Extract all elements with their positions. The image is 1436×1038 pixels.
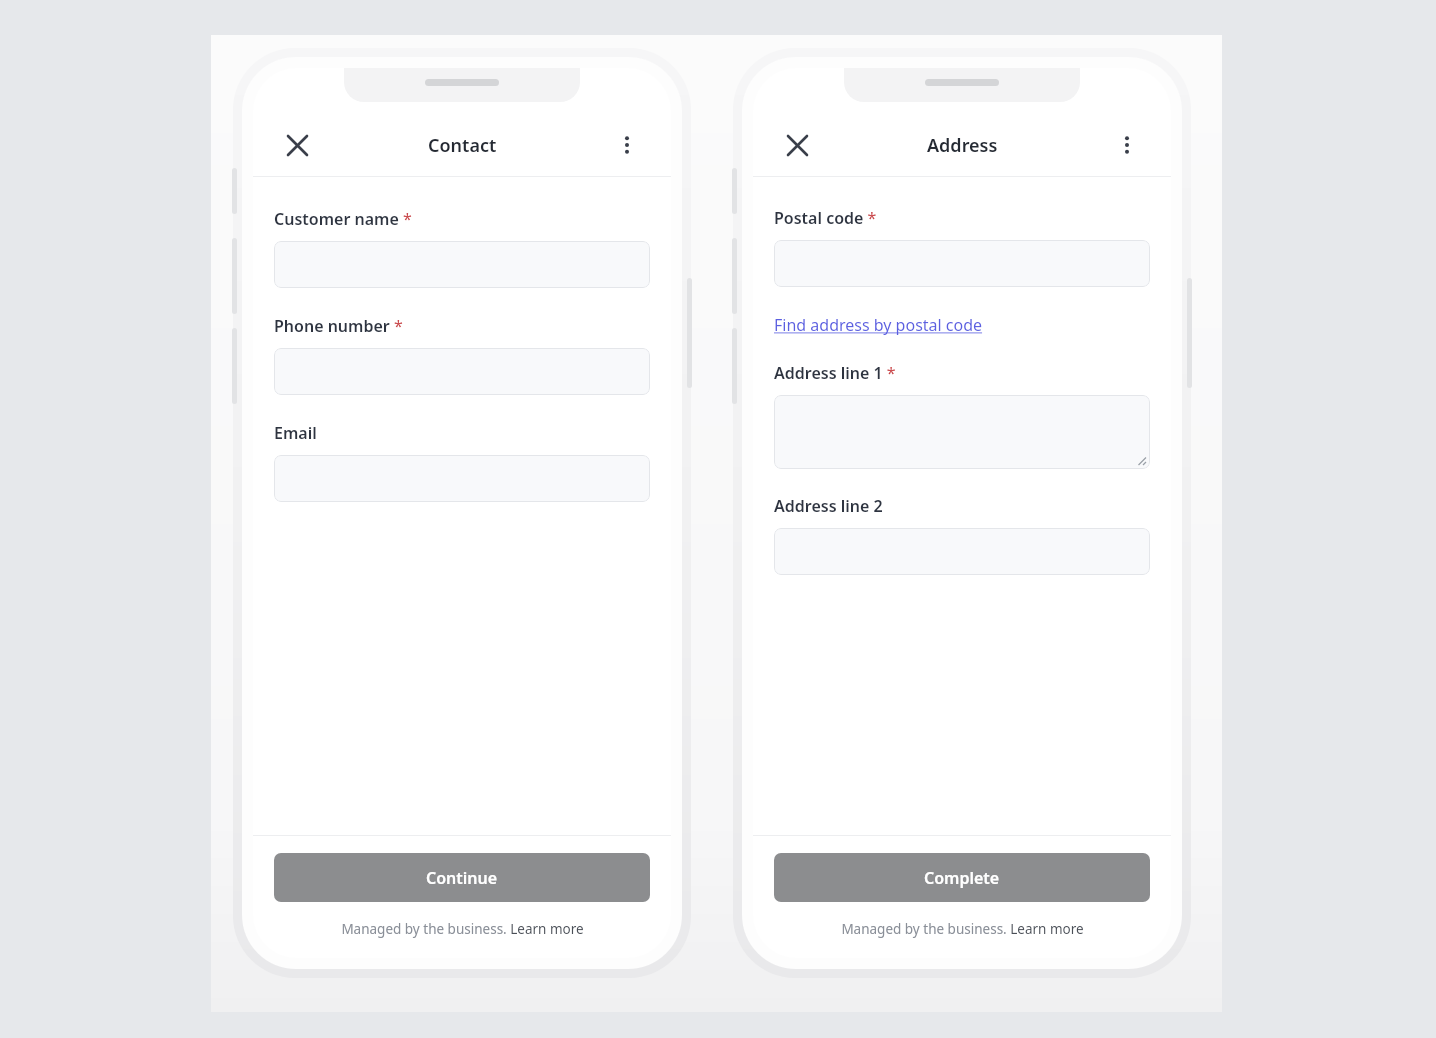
staticText: Managed by the business. Learn more bbox=[841, 920, 1084, 938]
button[interactable] bbox=[774, 240, 1150, 287]
staticText: Address line 2 bbox=[774, 495, 883, 517]
button[interactable]: Close bbox=[275, 123, 319, 167]
button[interactable]: Find address by postal code bbox=[774, 314, 983, 336]
button[interactable]: Close bbox=[775, 123, 819, 167]
staticText: Address line 1 * bbox=[774, 362, 896, 384]
staticText: Address bbox=[927, 133, 998, 158]
button[interactable] bbox=[274, 241, 650, 288]
staticText: Postal code * bbox=[774, 207, 877, 229]
staticText: Customer name * bbox=[274, 208, 412, 230]
button[interactable]: Continue bbox=[274, 853, 650, 902]
staticText: Continue bbox=[426, 867, 498, 889]
staticText: Email bbox=[274, 422, 317, 444]
button[interactable]: Complete bbox=[774, 853, 1150, 902]
button[interactable]: Managed by the business. Learn more bbox=[841, 920, 1084, 938]
button[interactable] bbox=[774, 528, 1150, 575]
staticText: Complete bbox=[924, 867, 1000, 889]
button[interactable]: More options bbox=[605, 123, 649, 167]
staticText: Managed by the business. Learn more bbox=[341, 920, 584, 938]
staticText: Phone number * bbox=[274, 315, 403, 337]
button[interactable] bbox=[774, 395, 1150, 469]
staticText: Find address by postal code bbox=[774, 314, 983, 336]
button[interactable] bbox=[274, 455, 650, 502]
button[interactable]: Managed by the business. Learn more bbox=[341, 920, 584, 938]
button[interactable]: More options bbox=[1105, 123, 1149, 167]
staticText: Contact bbox=[428, 133, 497, 158]
button[interactable] bbox=[274, 348, 650, 395]
